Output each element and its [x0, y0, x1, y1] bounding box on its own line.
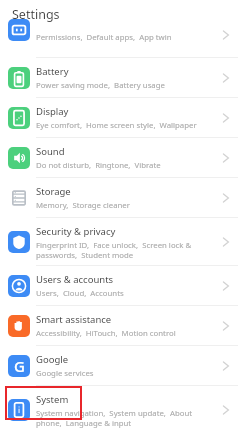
staticText: Users & accounts [36, 273, 114, 286]
staticText: Eye comfort, Home screen style, Wallpape… [36, 120, 197, 131]
staticText: Display [36, 105, 69, 118]
staticText: Power saving mode, Battery usage [36, 80, 165, 91]
button[interactable]: Display [0, 98, 238, 138]
staticText: Accessibility, HiTouch, Motion control [36, 328, 176, 339]
staticText: G [14, 356, 25, 376]
staticText: Google [36, 353, 69, 366]
staticText: System navigation, System update, About … [36, 408, 193, 428]
staticText: Permissions, Default apps, App twin [36, 32, 172, 43]
button[interactable]: Smart assistance [0, 306, 238, 346]
button[interactable]: Security & privacy [0, 218, 238, 266]
button[interactable]: Google [0, 346, 238, 386]
staticText: Fingerprint ID, Face unlock, Screen lock… [36, 240, 192, 260]
staticText: Memory, Storage cleaner [36, 200, 130, 211]
staticText: Google services [36, 368, 94, 379]
staticText: Battery [36, 65, 69, 78]
button[interactable]: Storage [0, 178, 238, 218]
staticText: Sound [36, 145, 65, 158]
staticText: System [36, 393, 69, 406]
staticText: Users, Cloud, Accounts [36, 288, 124, 299]
button[interactable]: System [0, 386, 238, 434]
staticText: Security & privacy [36, 225, 116, 238]
staticText: Storage [36, 185, 71, 198]
staticText: Settings [12, 6, 60, 23]
staticText: Smart assistance [36, 313, 112, 326]
button[interactable]: Battery [0, 58, 238, 98]
button[interactable]: Apps [0, 28, 238, 58]
button[interactable]: Sound [0, 138, 238, 178]
staticText: Do not disturb, Ringtone, Vibrate [36, 160, 161, 171]
button[interactable]: Users & accounts [0, 266, 238, 306]
